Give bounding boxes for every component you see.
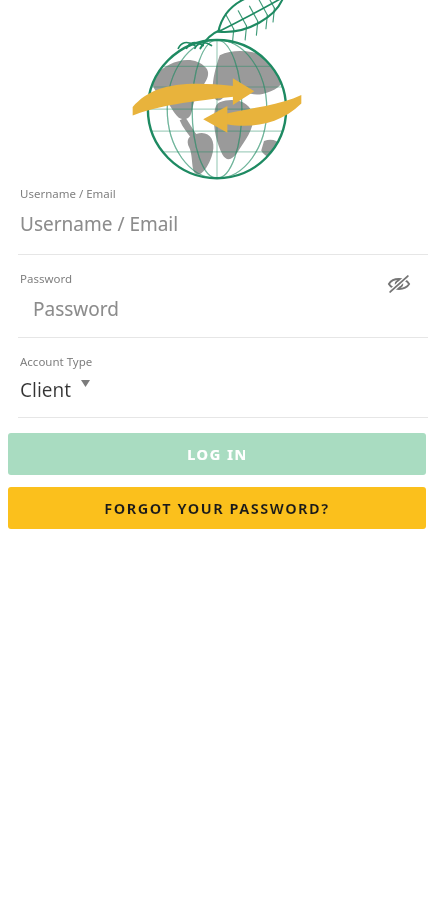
button[interactable]: Show password <box>382 267 416 301</box>
staticText: Client <box>20 377 72 403</box>
staticText: Username / Email <box>20 186 116 202</box>
button[interactable]: Password <box>0 293 434 325</box>
staticText: Username / Email <box>20 211 179 237</box>
button[interactable]: FORGOT YOUR PASSWORD? <box>8 487 426 529</box>
button[interactable]: Client <box>0 374 434 406</box>
staticText: FORGOT YOUR PASSWORD? <box>104 498 330 518</box>
staticText: LOG IN <box>187 444 248 464</box>
button[interactable]: LOG IN <box>8 433 426 475</box>
staticText: Account Type <box>20 354 93 370</box>
staticText: Password <box>20 271 73 287</box>
staticText: Password <box>33 296 119 322</box>
button[interactable]: Username / Email <box>0 207 434 241</box>
